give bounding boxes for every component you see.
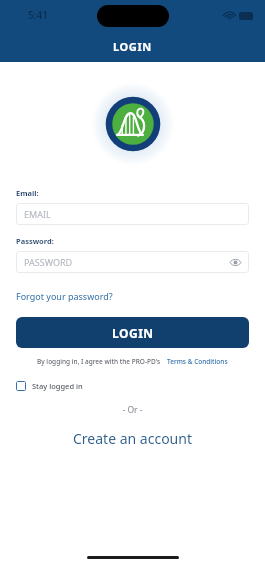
staticText: PASSWORD bbox=[24, 256, 73, 268]
staticText: - Or - bbox=[16, 404, 249, 416]
button[interactable]: EMAIL bbox=[16, 203, 249, 225]
button[interactable]: LOGIN bbox=[16, 317, 249, 348]
staticText: Terms & Conditions bbox=[167, 357, 228, 366]
staticText: Forgot your password? bbox=[16, 290, 113, 302]
button[interactable]: Terms & Conditions bbox=[167, 357, 228, 366]
staticText: Password: bbox=[16, 236, 54, 246]
staticText: Email: bbox=[16, 188, 39, 198]
staticText: LOGIN bbox=[113, 39, 152, 54]
button[interactable]: Show password bbox=[228, 255, 242, 269]
staticText: LOGIN bbox=[112, 325, 154, 341]
staticText: 5:41 bbox=[28, 8, 48, 22]
button[interactable]: Create an account bbox=[16, 426, 249, 451]
staticText: By logging in, I agree with the PRO-PD's bbox=[37, 357, 161, 366]
staticText: Stay logged in bbox=[32, 381, 83, 391]
button[interactable]: Forgot your password? bbox=[16, 288, 113, 304]
staticText: EMAIL bbox=[24, 208, 51, 220]
button[interactable]: PASSWORD bbox=[16, 251, 249, 273]
button[interactable]: Stay logged in bbox=[16, 379, 83, 393]
staticText: Create an account bbox=[73, 429, 192, 448]
